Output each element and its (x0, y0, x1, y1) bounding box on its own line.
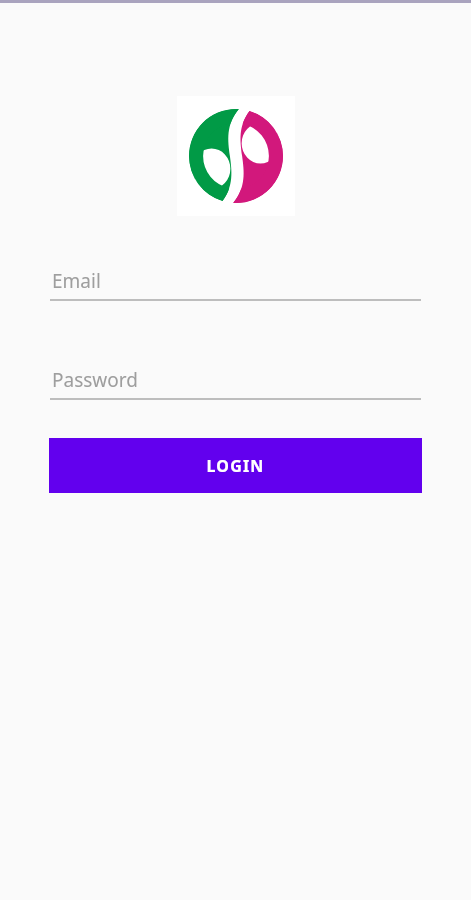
button[interactable]: LOGIN (49, 438, 422, 493)
staticText: Email (52, 268, 101, 294)
staticText: Password (52, 367, 138, 393)
staticText: LOGIN (206, 455, 265, 477)
button[interactable]: Password (50, 367, 421, 400)
button[interactable]: Email (50, 268, 421, 301)
